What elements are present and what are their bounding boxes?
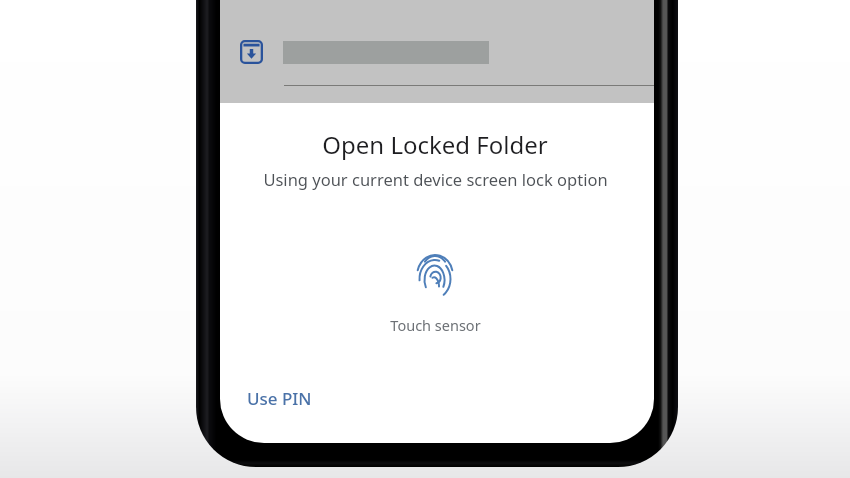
button[interactable]: Save to device: [232, 34, 497, 70]
other: Save to device: [240, 40, 263, 64]
staticText: Touch sensor: [390, 315, 481, 335]
staticText: Use PIN: [247, 387, 312, 410]
staticText: Using your current device screen lock op…: [263, 168, 608, 190]
button[interactable]: Touch fingerprint sensor: [411, 248, 459, 300]
button[interactable]: Use PIN: [237, 382, 322, 415]
staticText: Open Locked Folder: [322, 128, 548, 161]
